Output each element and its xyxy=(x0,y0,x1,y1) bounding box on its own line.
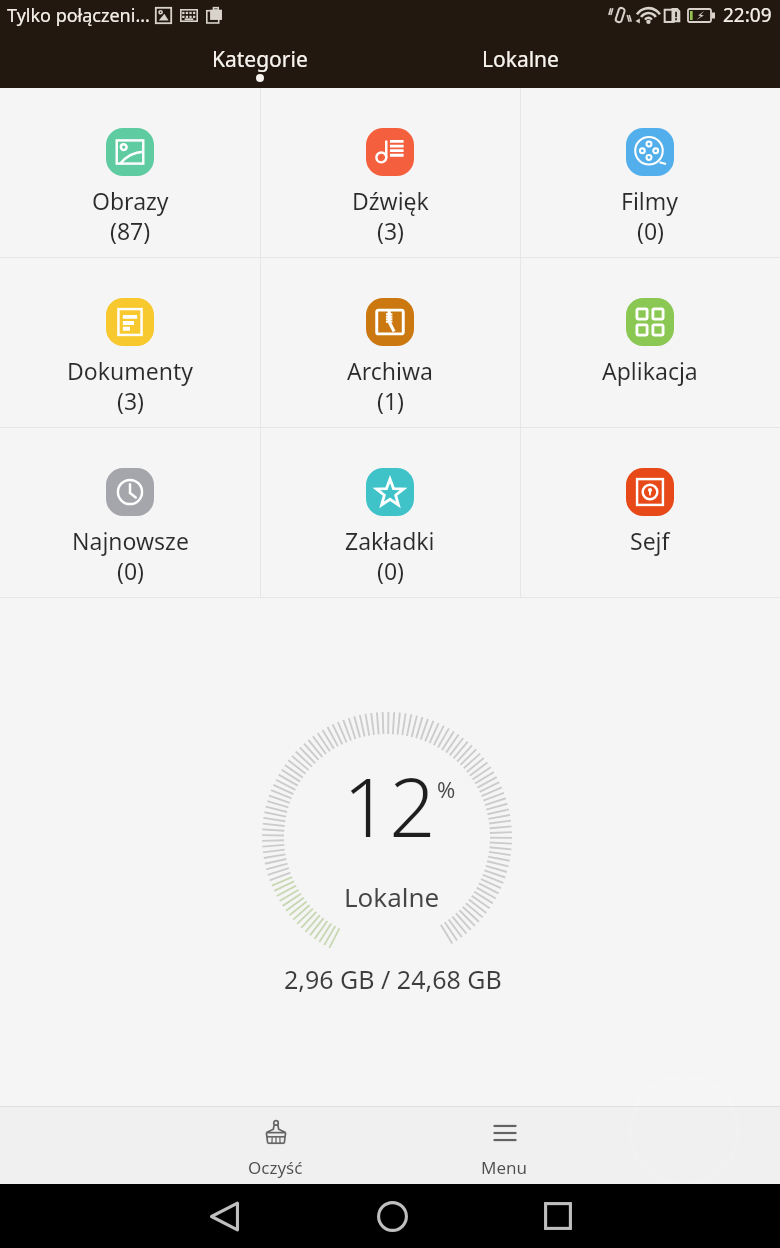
staticText: Tylko połączeni... xyxy=(7,3,150,28)
button[interactable]: Filmy xyxy=(520,88,780,258)
staticText: Filmy xyxy=(621,185,679,216)
staticText: (3) xyxy=(117,385,144,416)
staticText: Sejf xyxy=(630,525,670,556)
staticText: Lokalne xyxy=(344,879,440,914)
staticText: Najnowsze xyxy=(72,525,189,556)
staticText: (0) xyxy=(637,215,664,246)
staticText: (3) xyxy=(377,215,404,246)
button[interactable]: Sejf xyxy=(520,428,780,598)
staticText: (87) xyxy=(110,215,151,246)
staticText: Oczyść xyxy=(248,1156,303,1179)
staticText: Menu xyxy=(481,1156,528,1179)
staticText: Dokumenty xyxy=(67,355,193,386)
button[interactable]: Recents xyxy=(530,1188,586,1244)
button[interactable]: Dokumenty xyxy=(0,258,260,428)
button[interactable]: Dźwięk xyxy=(260,88,520,258)
button[interactable]: Back xyxy=(196,1188,252,1244)
staticText: Lokalne xyxy=(482,45,559,74)
staticText: Archiwa xyxy=(347,355,433,386)
staticText: (1) xyxy=(377,385,404,416)
staticText: Kategorie xyxy=(212,45,308,74)
button[interactable]: Archiwa xyxy=(260,258,520,428)
staticText: Aplikacja xyxy=(602,355,698,386)
button[interactable]: Menu xyxy=(390,1106,619,1184)
button[interactable]: Oczyść xyxy=(161,1106,390,1184)
button[interactable]: Home xyxy=(364,1188,420,1244)
staticText: (0) xyxy=(377,555,404,586)
button[interactable]: Aplikacja xyxy=(520,258,780,428)
button[interactable]: Obrazy xyxy=(0,88,260,258)
staticText: Dźwięk xyxy=(352,185,429,216)
staticText: 22:09 xyxy=(723,2,772,28)
button[interactable]: Najnowsze xyxy=(0,428,260,598)
button[interactable]: Kategorie xyxy=(130,30,390,88)
staticText: Obrazy xyxy=(92,185,169,216)
staticText: 12 xyxy=(343,750,436,860)
button[interactable]: Lokalne xyxy=(390,30,650,88)
staticText: 2,96 GB / 24,68 GB xyxy=(284,962,502,996)
button[interactable]: Zakładki xyxy=(260,428,520,598)
staticText: % xyxy=(437,774,456,804)
staticText: (0) xyxy=(117,555,144,586)
staticText: Zakładki xyxy=(345,525,435,556)
